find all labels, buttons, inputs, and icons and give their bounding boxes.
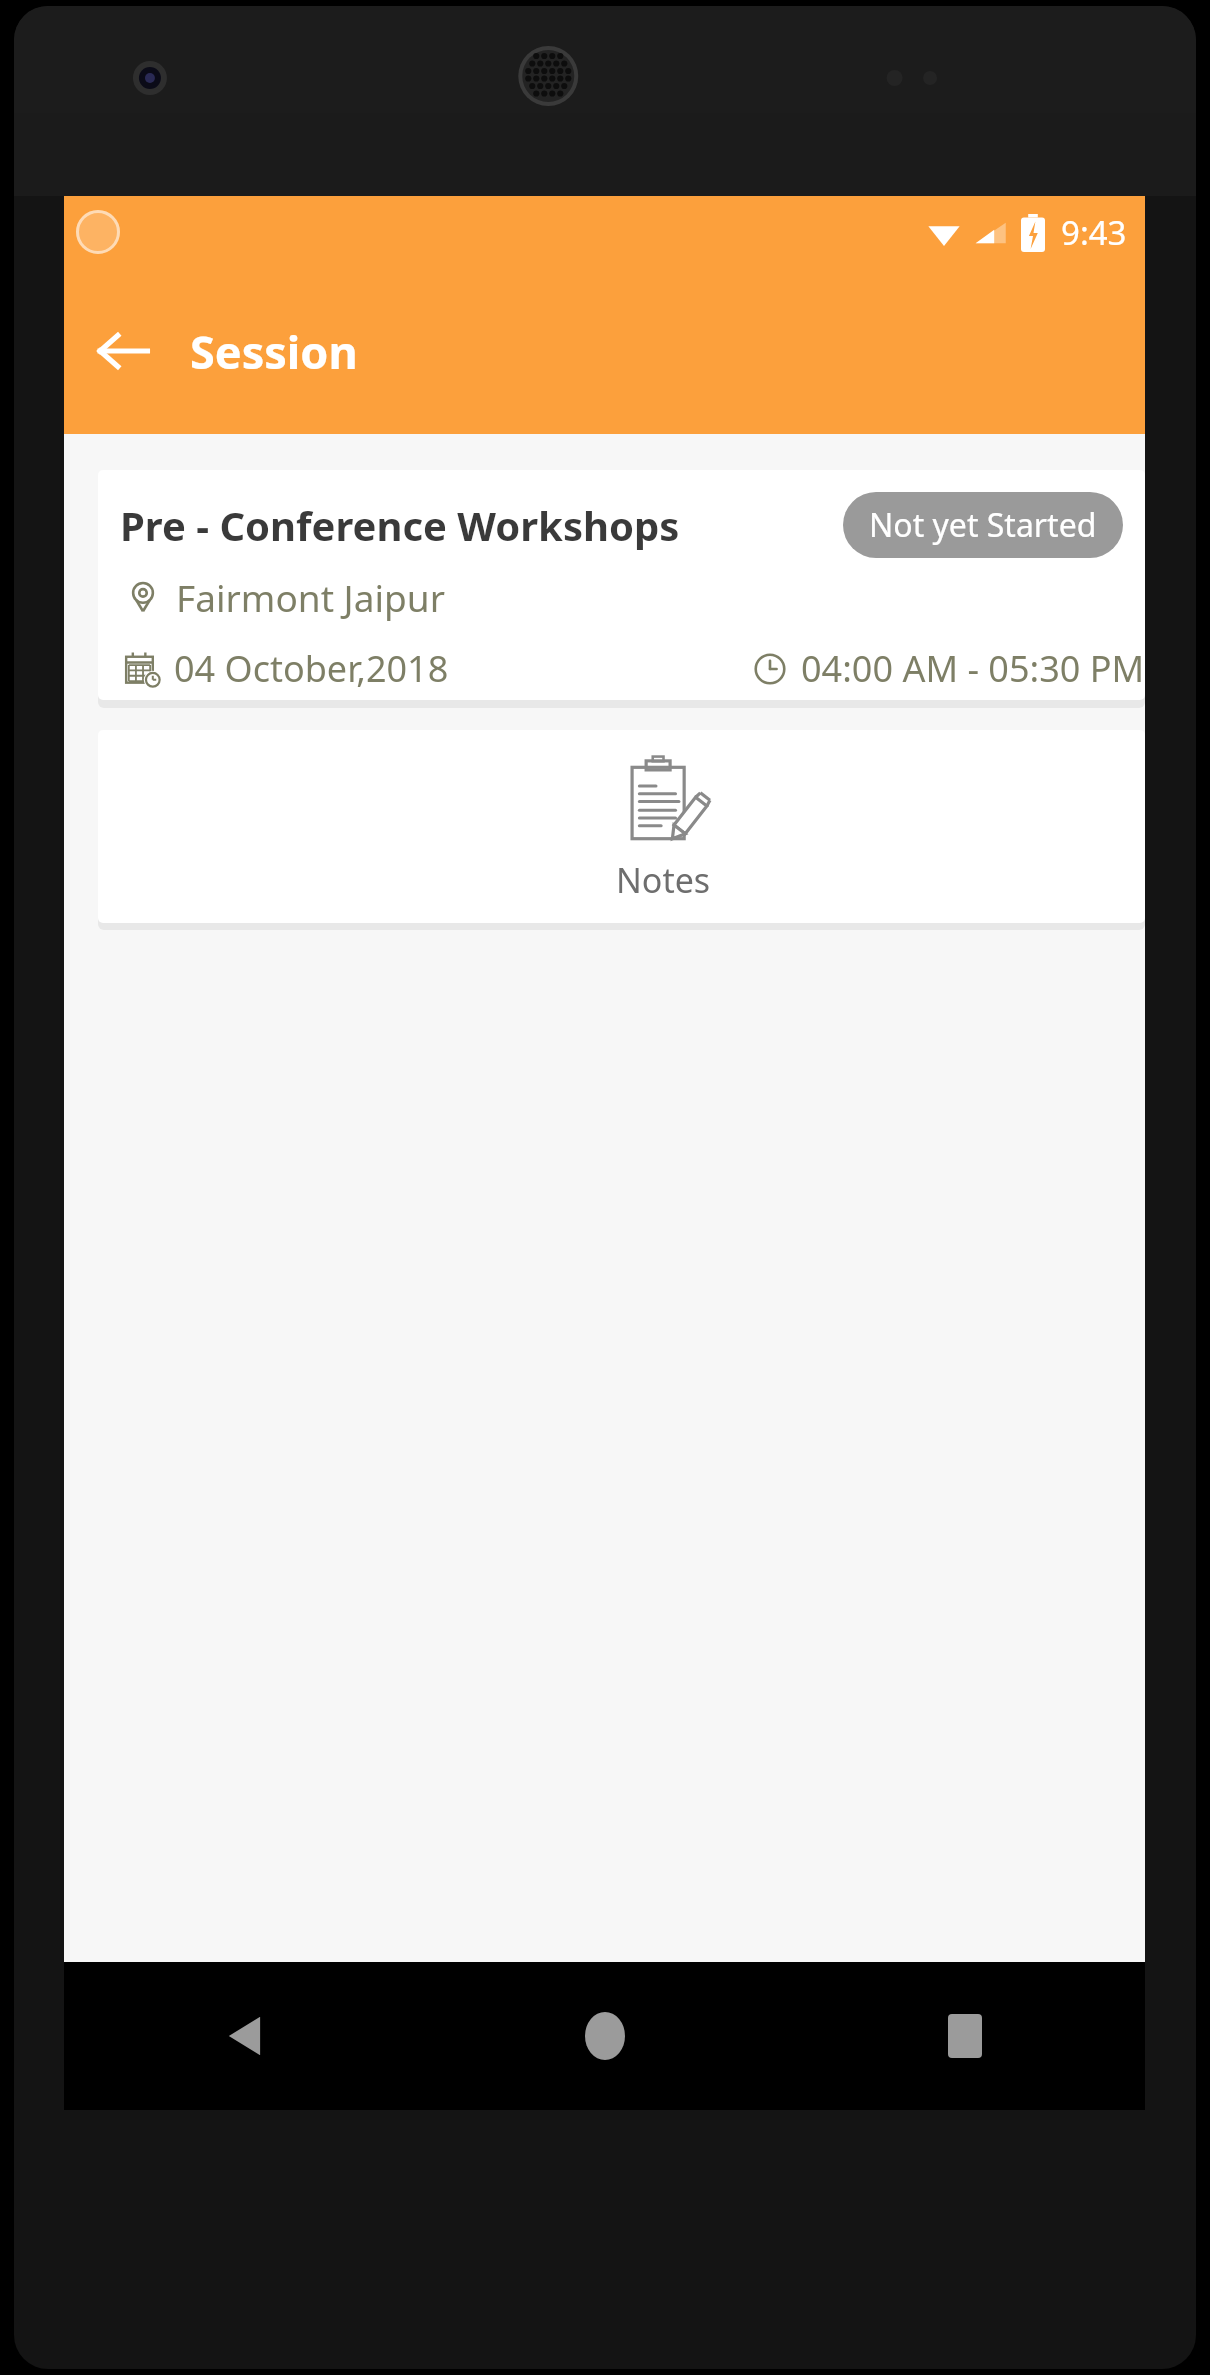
button[interactable]: Notes xyxy=(578,730,748,923)
staticText: Pre - Conference Workshops xyxy=(120,498,680,552)
staticText: Not yet Started xyxy=(869,503,1097,547)
staticText: 04:00 AM - 05:30 PM xyxy=(801,644,1145,693)
button[interactable]: Recent apps xyxy=(785,1962,1145,2110)
button[interactable]: Back xyxy=(84,312,162,390)
staticText: 04 October,2018 xyxy=(174,644,449,693)
button[interactable]: Home xyxy=(425,1962,785,2110)
button[interactable]: Not yet Started xyxy=(843,492,1123,558)
staticText: 9:43 xyxy=(1061,210,1127,255)
staticText: Notes xyxy=(616,857,711,903)
staticText: Fairmont Jaipur xyxy=(176,572,445,622)
button[interactable]: Back xyxy=(64,1962,425,2110)
staticText: Session xyxy=(190,321,358,382)
button[interactable]: Pre - Conference Workshops xyxy=(98,470,1145,700)
